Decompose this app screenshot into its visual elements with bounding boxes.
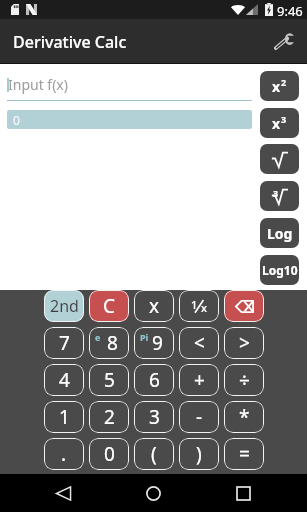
button[interactable]: x cubed [260, 108, 299, 138]
staticText: 3 [281, 113, 287, 125]
button[interactable]: cube root [260, 181, 299, 211]
staticText: x [272, 77, 281, 96]
button[interactable]: 0 [89, 438, 129, 470]
button[interactable]: 7 [44, 327, 84, 359]
staticText: Pi [140, 331, 149, 343]
staticText: 0 [104, 441, 115, 467]
staticText: 3 [149, 404, 160, 430]
button[interactable]: 1 [44, 401, 84, 433]
staticText: 2nd [50, 295, 79, 317]
button[interactable]: square root [260, 144, 299, 174]
button[interactable]: C [89, 290, 129, 322]
button[interactable]: Back [44, 482, 83, 504]
staticText: ÷ [239, 367, 250, 393]
staticText: . [61, 441, 67, 467]
staticText: * [239, 404, 250, 430]
staticText: > [239, 330, 250, 356]
staticText: ) [196, 441, 202, 467]
button[interactable]: Settings [269, 26, 299, 56]
staticText: 9 [152, 330, 163, 356]
button[interactable]: 3 [134, 401, 174, 433]
button[interactable]: = [224, 438, 264, 470]
button[interactable]: - [179, 401, 219, 433]
staticText: 6 [149, 367, 160, 393]
button[interactable]: x squared [260, 71, 299, 101]
staticText: 7 [59, 330, 70, 356]
staticText: 2 [281, 76, 287, 88]
staticText: ( [151, 441, 157, 467]
staticText: Input f(x) [8, 75, 68, 94]
staticText: Log [267, 224, 293, 243]
staticText: 4 [59, 367, 70, 393]
staticText: e [95, 331, 101, 343]
button[interactable]: < [179, 327, 219, 359]
button[interactable]: 5 [89, 364, 129, 396]
staticText: 1 [59, 404, 70, 430]
button[interactable]: Log10 [260, 255, 299, 285]
staticText: x [149, 293, 160, 319]
staticText: 2 [104, 404, 115, 430]
button[interactable]: Pi [134, 327, 174, 359]
button[interactable]: + [179, 364, 219, 396]
staticText: 5 [104, 367, 115, 393]
staticText: Log10 [262, 262, 298, 278]
button[interactable]: . [44, 438, 84, 470]
staticText: 3 [273, 187, 279, 199]
button[interactable]: 2 [89, 401, 129, 433]
staticText: 8 [107, 330, 118, 356]
button[interactable]: 6 [134, 364, 174, 396]
button[interactable]: Log [260, 218, 299, 248]
staticText: 0 [13, 112, 20, 128]
staticText: Derivative Calc [13, 31, 127, 53]
staticText: x [272, 114, 281, 133]
button[interactable]: 0 [7, 110, 252, 129]
button[interactable]: ÷ [224, 364, 264, 396]
button[interactable]: 1 [179, 290, 219, 322]
staticText: < [194, 330, 205, 356]
button[interactable]: ( [134, 438, 174, 470]
button[interactable]: > [224, 327, 264, 359]
staticText: C [103, 293, 116, 319]
staticText: x [201, 300, 207, 315]
button[interactable]: Home [134, 482, 173, 504]
staticText: 9:46 [277, 2, 303, 20]
staticText: 1 [191, 297, 198, 312]
button[interactable]: 2nd [44, 290, 84, 322]
button[interactable]: 4 [44, 364, 84, 396]
staticText: - [196, 404, 203, 430]
button[interactable]: e [89, 327, 129, 359]
staticText: + [194, 367, 205, 393]
button[interactable]: Recent apps [224, 482, 263, 504]
button[interactable]: * [224, 401, 264, 433]
button[interactable]: ) [179, 438, 219, 470]
staticText: = [239, 441, 250, 467]
button[interactable]: Delete [224, 290, 264, 322]
button[interactable]: x [134, 290, 174, 322]
